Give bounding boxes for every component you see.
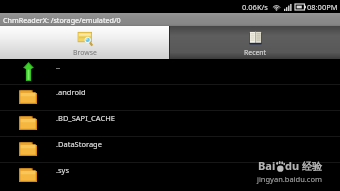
staticText: Browse <box>73 48 97 57</box>
button[interactable]: .. <box>0 59 340 84</box>
staticText: jingyan.baidu.com <box>257 174 322 184</box>
staticText: 经验 <box>302 160 322 173</box>
button[interactable]: Browse <box>0 26 169 59</box>
button[interactable]: Recent <box>170 26 340 59</box>
button[interactable]: .sys <box>0 163 340 188</box>
staticText: .sys <box>56 165 70 175</box>
staticText: 08:00PM <box>307 2 338 12</box>
button[interactable]: .DataStorage <box>0 137 340 162</box>
staticText: ChmReaderX: /storage/emulated/0 <box>3 15 121 25</box>
button[interactable]: .android <box>0 85 340 110</box>
staticText: Recent <box>244 48 267 57</box>
staticText: .android <box>56 87 86 97</box>
staticText: Bai <box>258 158 276 173</box>
button[interactable]: .BD_SAPI_CACHE <box>0 111 340 136</box>
staticText: .DataStorage <box>56 139 102 149</box>
staticText: .BD_SAPI_CACHE <box>56 113 115 123</box>
staticText: .. <box>56 61 61 71</box>
staticText: 0.06K/s <box>242 2 268 12</box>
staticText: du <box>285 158 300 173</box>
